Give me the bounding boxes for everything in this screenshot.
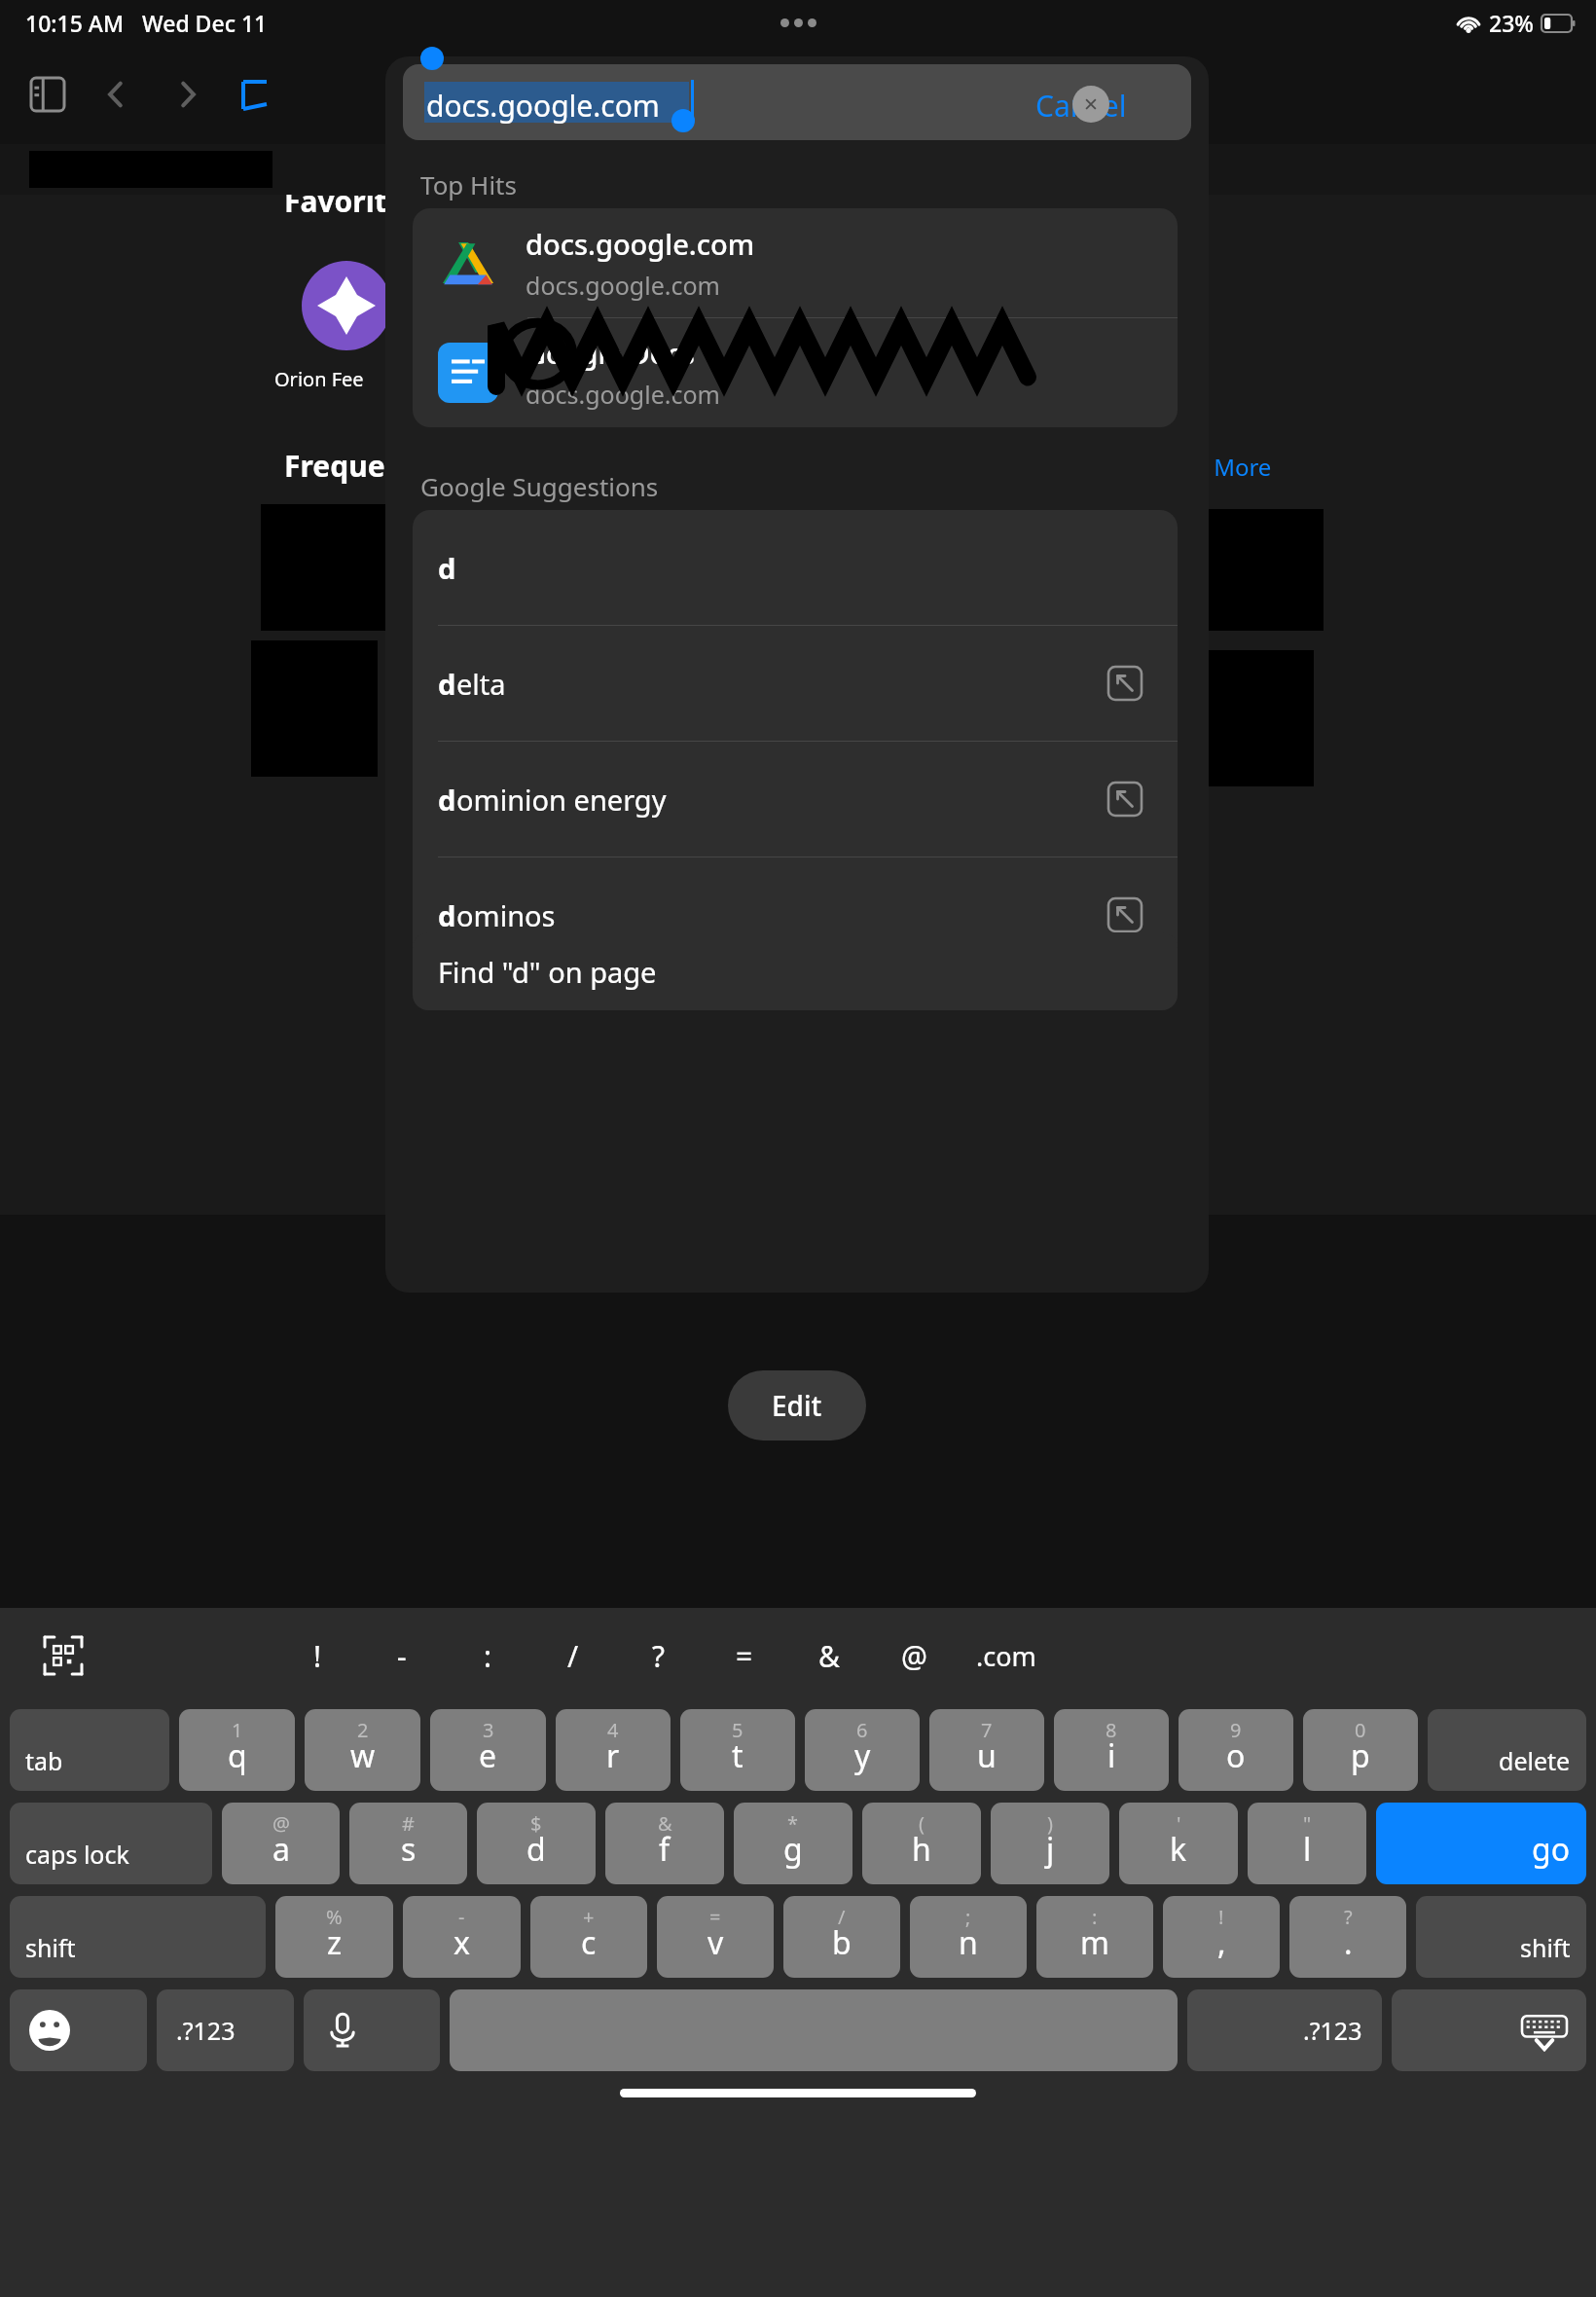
staticText: docs.google.com: [526, 225, 755, 263]
staticText: .?123: [1303, 2014, 1362, 2047]
button[interactable]: 1: [179, 1709, 295, 1791]
staticText: docs.google.com: [426, 86, 660, 126]
button[interactable]: #: [349, 1803, 467, 1884]
button[interactable]: [450, 1989, 1178, 2071]
staticText: r: [606, 1734, 620, 1777]
button[interactable]: +: [530, 1896, 647, 1978]
staticText: d: [438, 896, 456, 934]
staticText: 7: [981, 1717, 993, 1743]
button[interactable]: d: [413, 857, 1178, 972]
staticText: 4: [607, 1717, 619, 1743]
staticText: @: [272, 1810, 290, 1837]
button[interactable]: Dictate: [304, 1989, 440, 2071]
staticText: ": [1303, 1810, 1312, 1837]
button[interactable]: ?: [624, 1608, 694, 1703]
button[interactable]: d: [413, 626, 1178, 741]
button[interactable]: Forward: [162, 68, 214, 121]
button[interactable]: /: [538, 1608, 608, 1703]
button[interactable]: Hide keyboard: [1392, 1989, 1586, 2071]
staticText: Wed Dec 11: [142, 8, 268, 38]
button[interactable]: *: [734, 1803, 852, 1884]
button[interactable]: shift: [1416, 1896, 1586, 1978]
staticText: v: [707, 1921, 724, 1964]
staticText: ?: [652, 1636, 666, 1676]
button[interactable]: Scan: [39, 1631, 88, 1680]
button[interactable]: d: [413, 510, 1178, 625]
staticText: q: [228, 1734, 247, 1777]
button[interactable]: $: [477, 1803, 596, 1884]
button[interactable]: Google Docs: [413, 318, 1178, 427]
button[interactable]: -: [403, 1896, 521, 1978]
button[interactable]: &: [605, 1803, 724, 1884]
button[interactable]: go: [1376, 1803, 1586, 1884]
button[interactable]: =: [709, 1608, 780, 1703]
staticText: ?: [1344, 1904, 1353, 1930]
button[interactable]: Fill query: [1106, 895, 1144, 934]
staticText: Cancel: [1035, 86, 1127, 126]
button[interactable]: 8: [1054, 1709, 1169, 1791]
button[interactable]: Find "d" on page: [413, 932, 1178, 1010]
button[interactable]: /: [783, 1896, 900, 1978]
staticText: n: [959, 1921, 978, 1964]
staticText: o: [1226, 1734, 1246, 1777]
button[interactable]: d: [413, 742, 1178, 857]
staticText: caps lock: [25, 1838, 129, 1871]
button[interactable]: Fill query: [1106, 664, 1144, 703]
button[interactable]: More: [991, 64, 1051, 125]
button[interactable]: Back: [90, 68, 142, 121]
staticText: /: [567, 1636, 579, 1676]
button[interactable]: docs.google.com: [403, 64, 1191, 140]
button[interactable]: ): [991, 1803, 1109, 1884]
staticText: g: [783, 1828, 803, 1871]
button[interactable]: .?123: [1187, 1989, 1382, 2071]
button[interactable]: 2: [305, 1709, 420, 1791]
button[interactable]: Emoji: [10, 1989, 147, 2071]
staticText: 10:15 AM: [25, 8, 125, 38]
staticText: b: [832, 1921, 852, 1964]
button[interactable]: delete: [1428, 1709, 1586, 1791]
button[interactable]: Share: [911, 64, 971, 125]
button[interactable]: ': [1119, 1803, 1238, 1884]
button[interactable]: =: [657, 1896, 774, 1978]
staticText: e: [479, 1734, 497, 1777]
button[interactable]: :: [453, 1608, 523, 1703]
staticText: Orion Fee: [274, 366, 364, 392]
button[interactable]: shift: [10, 1896, 266, 1978]
button[interactable]: -: [367, 1608, 437, 1703]
button[interactable]: Tabs: [829, 64, 889, 125]
button[interactable]: tab: [10, 1709, 169, 1791]
button[interactable]: Clear: [1072, 86, 1109, 123]
button[interactable]: @: [879, 1608, 949, 1703]
button[interactable]: &: [794, 1608, 864, 1703]
button[interactable]: !: [1163, 1896, 1280, 1978]
button[interactable]: 9: [1179, 1709, 1293, 1791]
button[interactable]: .com: [971, 1608, 1041, 1703]
staticText: ,: [1217, 1921, 1226, 1964]
button[interactable]: 3: [430, 1709, 546, 1791]
button[interactable]: Edit: [728, 1370, 866, 1440]
button[interactable]: Fill query: [1106, 780, 1144, 819]
button[interactable]: ": [1248, 1803, 1366, 1884]
button[interactable]: caps lock: [10, 1803, 212, 1884]
button[interactable]: 0: [1303, 1709, 1418, 1791]
button[interactable]: [302, 261, 391, 350]
button[interactable]: !: [282, 1608, 352, 1703]
button[interactable]: Sidebar: [21, 68, 74, 121]
button[interactable]: 4: [556, 1709, 671, 1791]
button[interactable]: docs.google.com: [413, 208, 1178, 317]
button[interactable]: ;: [910, 1896, 1027, 1978]
button[interactable]: (: [862, 1803, 981, 1884]
button[interactable]: 5: [680, 1709, 795, 1791]
button[interactable]: 6: [805, 1709, 920, 1791]
button[interactable]: %: [275, 1896, 393, 1978]
button[interactable]: :: [1036, 1896, 1153, 1978]
button[interactable]: ?: [1289, 1896, 1406, 1978]
staticText: w: [350, 1734, 376, 1777]
button[interactable]: @: [222, 1803, 340, 1884]
staticText: Google Suggestions: [420, 469, 659, 503]
button[interactable]: .?123: [157, 1989, 294, 2071]
button[interactable]: 7: [929, 1709, 1044, 1791]
